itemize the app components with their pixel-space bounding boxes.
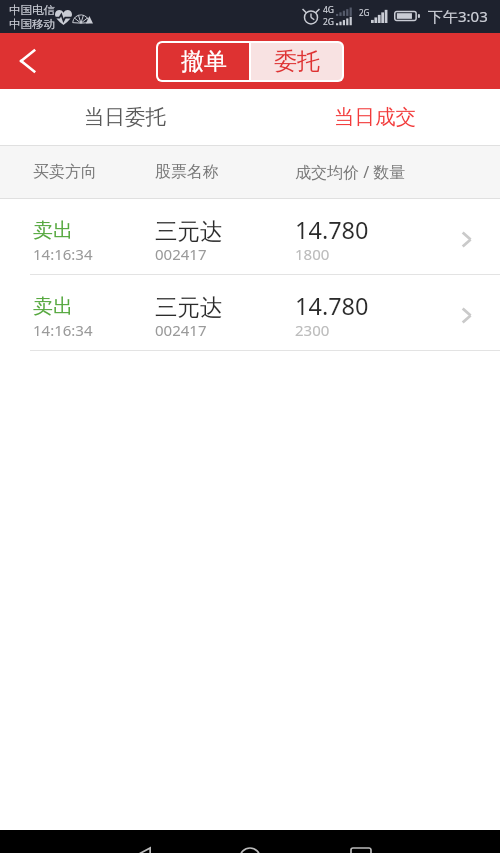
button[interactable]: 撤单 [158,43,249,80]
staticText: 2G [323,16,335,28]
button[interactable]: 当日委托 [0,89,250,145]
staticText: 002417 [155,320,207,340]
staticText: 4G [323,4,335,16]
staticText: 当日成交 [334,104,416,130]
button[interactable]: 委托 [251,43,342,80]
button[interactable]: Recents [337,830,385,853]
button[interactable]: Home [226,830,274,853]
staticText: 2300 [295,320,330,340]
staticText: 股票名称 [155,162,219,182]
staticText: 14:16:34 [33,320,93,340]
staticText: 成交均价 / 数量 [295,161,406,183]
staticText: 卖出 [33,218,73,243]
staticText: 中国电信 [9,3,55,17]
staticText: 当日委托 [84,104,166,130]
staticText: 14:16:34 [33,244,93,264]
staticText: 卖出 [33,294,73,319]
button[interactable]: 当日成交 [250,89,500,145]
staticText: 中国移动 [9,17,55,31]
staticText: 14.780 [295,214,369,246]
button[interactable]: 卖出 [0,275,500,351]
button[interactable]: Back [120,830,168,853]
staticText: 14.780 [295,290,369,322]
staticText: 三元达 [155,293,223,321]
staticText: 2G [359,7,370,18]
staticText: 买卖方向 [33,162,97,182]
button[interactable]: Back [0,33,56,89]
staticText: 撤单 [181,47,227,76]
staticText: 1800 [295,244,330,264]
button[interactable]: 卖出 [0,199,500,275]
staticText: 下午3:03 [428,6,488,26]
staticText: 委托 [274,47,320,76]
staticText: 002417 [155,244,207,264]
staticText: 三元达 [155,217,223,245]
